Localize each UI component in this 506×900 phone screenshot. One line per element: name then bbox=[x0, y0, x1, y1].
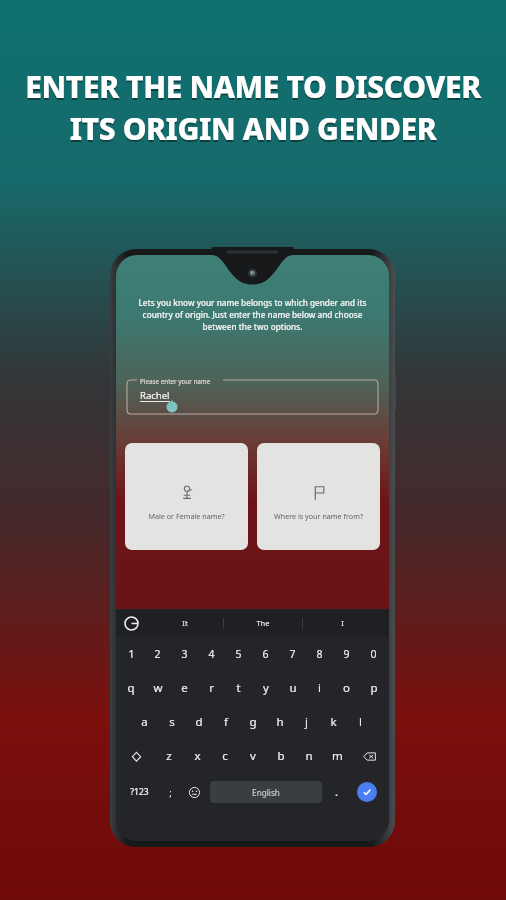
button[interactable]: h bbox=[266, 705, 293, 739]
button[interactable]: . bbox=[325, 773, 348, 811]
button[interactable]: 8 bbox=[306, 637, 333, 671]
staticText: a bbox=[141, 714, 148, 730]
staticText: f bbox=[224, 714, 228, 730]
button[interactable]: a bbox=[131, 705, 158, 739]
button[interactable]: I bbox=[303, 609, 381, 637]
button[interactable]: e bbox=[171, 671, 198, 705]
staticText: b bbox=[277, 748, 285, 764]
button[interactable]: Shift bbox=[118, 739, 155, 773]
staticText: w bbox=[153, 680, 163, 696]
button[interactable]: Enter bbox=[348, 773, 385, 811]
staticText: 8 bbox=[316, 647, 323, 661]
staticText: y bbox=[263, 680, 269, 696]
button[interactable]: ?123 bbox=[120, 773, 159, 811]
button[interactable]: p bbox=[360, 671, 387, 705]
staticText: Please enter your name bbox=[140, 377, 211, 385]
staticText: k bbox=[330, 714, 337, 730]
button[interactable]: o bbox=[333, 671, 360, 705]
button[interactable]: r bbox=[198, 671, 225, 705]
button[interactable]: 3 bbox=[171, 637, 198, 671]
button[interactable]: s bbox=[158, 705, 185, 739]
staticText: d bbox=[195, 714, 203, 730]
other: Google bbox=[125, 617, 138, 630]
staticText: 0 bbox=[370, 647, 377, 661]
button[interactable]: Emoji bbox=[182, 773, 207, 811]
staticText: The bbox=[256, 618, 270, 628]
button[interactable]: z bbox=[155, 739, 183, 773]
button[interactable]: 7 bbox=[279, 637, 306, 671]
staticText: ; bbox=[169, 787, 172, 798]
button[interactable]: Male or Female name? bbox=[125, 443, 248, 550]
button[interactable]: 4 bbox=[198, 637, 225, 671]
staticText: Rachel bbox=[140, 389, 170, 402]
staticText: ENTER THE NAME TO DISCOVER ITS ORIGIN AN… bbox=[16, 66, 490, 149]
button[interactable]: w bbox=[144, 671, 171, 705]
button[interactable]: 9 bbox=[333, 637, 360, 671]
button[interactable]: English bbox=[210, 781, 322, 803]
button[interactable]: i bbox=[306, 671, 333, 705]
staticText: It bbox=[182, 618, 188, 628]
staticText: e bbox=[181, 680, 188, 696]
staticText: Lets you know your name belongs to which… bbox=[128, 297, 377, 332]
staticText: t bbox=[236, 680, 241, 696]
button[interactable]: k bbox=[320, 705, 347, 739]
button[interactable]: The bbox=[224, 609, 302, 637]
button[interactable]: b bbox=[267, 739, 295, 773]
button[interactable]: c bbox=[211, 739, 239, 773]
button[interactable]: f bbox=[212, 705, 239, 739]
staticText: . bbox=[335, 786, 338, 798]
staticText: 4 bbox=[208, 647, 215, 661]
button[interactable]: d bbox=[185, 705, 212, 739]
staticText: m bbox=[332, 748, 343, 764]
staticText: I bbox=[341, 618, 344, 628]
staticText: q bbox=[127, 680, 135, 696]
button[interactable]: Where is your name from? bbox=[257, 443, 380, 550]
button[interactable]: g bbox=[239, 705, 266, 739]
staticText: 6 bbox=[262, 647, 269, 661]
button[interactable]: u bbox=[279, 671, 306, 705]
button[interactable]: x bbox=[183, 739, 211, 773]
staticText: p bbox=[370, 680, 378, 696]
staticText: x bbox=[194, 748, 201, 764]
button[interactable]: 5 bbox=[225, 637, 252, 671]
button[interactable]: l bbox=[347, 705, 374, 739]
staticText: 2 bbox=[154, 647, 161, 661]
staticText: c bbox=[222, 748, 228, 764]
button[interactable]: 0 bbox=[360, 637, 387, 671]
staticText: ?123 bbox=[130, 786, 149, 798]
staticText: r bbox=[209, 680, 214, 696]
staticText: 9 bbox=[343, 647, 350, 661]
button[interactable]: Backspace bbox=[351, 739, 387, 773]
button[interactable]: 1 bbox=[118, 637, 144, 671]
button[interactable]: ; bbox=[159, 773, 182, 811]
staticText: z bbox=[166, 748, 172, 764]
button[interactable]: Please enter your name bbox=[125, 372, 380, 416]
staticText: o bbox=[343, 680, 350, 696]
staticText: g bbox=[249, 714, 257, 730]
staticText: Male or Female name? bbox=[128, 511, 245, 521]
staticText: h bbox=[276, 714, 284, 730]
staticText: j bbox=[305, 714, 308, 730]
staticText: 7 bbox=[289, 647, 296, 661]
button[interactable]: m bbox=[323, 739, 351, 773]
staticText: u bbox=[289, 680, 297, 696]
button[interactable]: j bbox=[293, 705, 320, 739]
staticText: l bbox=[359, 714, 362, 730]
staticText: n bbox=[305, 748, 313, 764]
staticText: v bbox=[250, 748, 256, 764]
button[interactable]: q bbox=[118, 671, 144, 705]
staticText: 5 bbox=[235, 647, 242, 661]
staticText: s bbox=[169, 714, 175, 730]
button[interactable]: t bbox=[225, 671, 252, 705]
staticText: i bbox=[318, 680, 321, 696]
button[interactable]: v bbox=[239, 739, 267, 773]
staticText: ENTER THE NAME TO DISCOVER ITS ORIGIN AN… bbox=[16, 68, 490, 151]
button[interactable]: y bbox=[252, 671, 279, 705]
button[interactable]: 2 bbox=[144, 637, 171, 671]
button[interactable]: n bbox=[295, 739, 323, 773]
button[interactable]: It bbox=[146, 609, 223, 637]
staticText: 3 bbox=[181, 647, 188, 661]
staticText: English bbox=[252, 787, 280, 798]
staticText: Where is your name from? bbox=[260, 511, 377, 521]
button[interactable]: 6 bbox=[252, 637, 279, 671]
